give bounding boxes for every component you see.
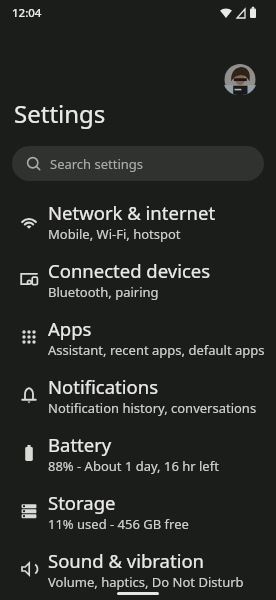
button[interactable]: Apps [0, 308, 276, 366]
staticText: Storage [48, 490, 116, 515]
button[interactable]: Network & internet [0, 192, 276, 250]
staticText: 12:04 [12, 5, 42, 21]
staticText: Apps [48, 316, 92, 341]
staticText: Mobile, Wi-Fi, hotspot [48, 225, 181, 243]
button[interactable]: Storage [0, 482, 276, 540]
staticText: Notifications [48, 374, 159, 399]
staticText: Sound & vibration [48, 548, 205, 573]
staticText: Settings [14, 97, 106, 130]
staticText: Network & internet [48, 200, 216, 225]
staticText: Assistant, recent apps, default apps [48, 341, 265, 359]
staticText: Volume, haptics, Do Not Disturb [48, 573, 244, 591]
button[interactable]: Connected devices [0, 250, 276, 308]
button[interactable] [223, 64, 257, 95]
staticText: 88% - About 1 day, 16 hr left [48, 457, 219, 475]
staticText: Notification history, conversations [48, 399, 257, 417]
button[interactable]: Battery [0, 424, 276, 482]
button[interactable]: Sound & vibration [0, 540, 276, 598]
staticText: Search settings [50, 155, 144, 173]
staticText: Battery [48, 432, 112, 457]
staticText: Bluetooth, pairing [48, 283, 159, 301]
button[interactable]: Notifications [0, 366, 276, 424]
staticText: Connected devices [48, 258, 211, 283]
staticText: 11% used - 456 GB free [48, 515, 189, 533]
button[interactable]: Search settings [12, 146, 264, 181]
